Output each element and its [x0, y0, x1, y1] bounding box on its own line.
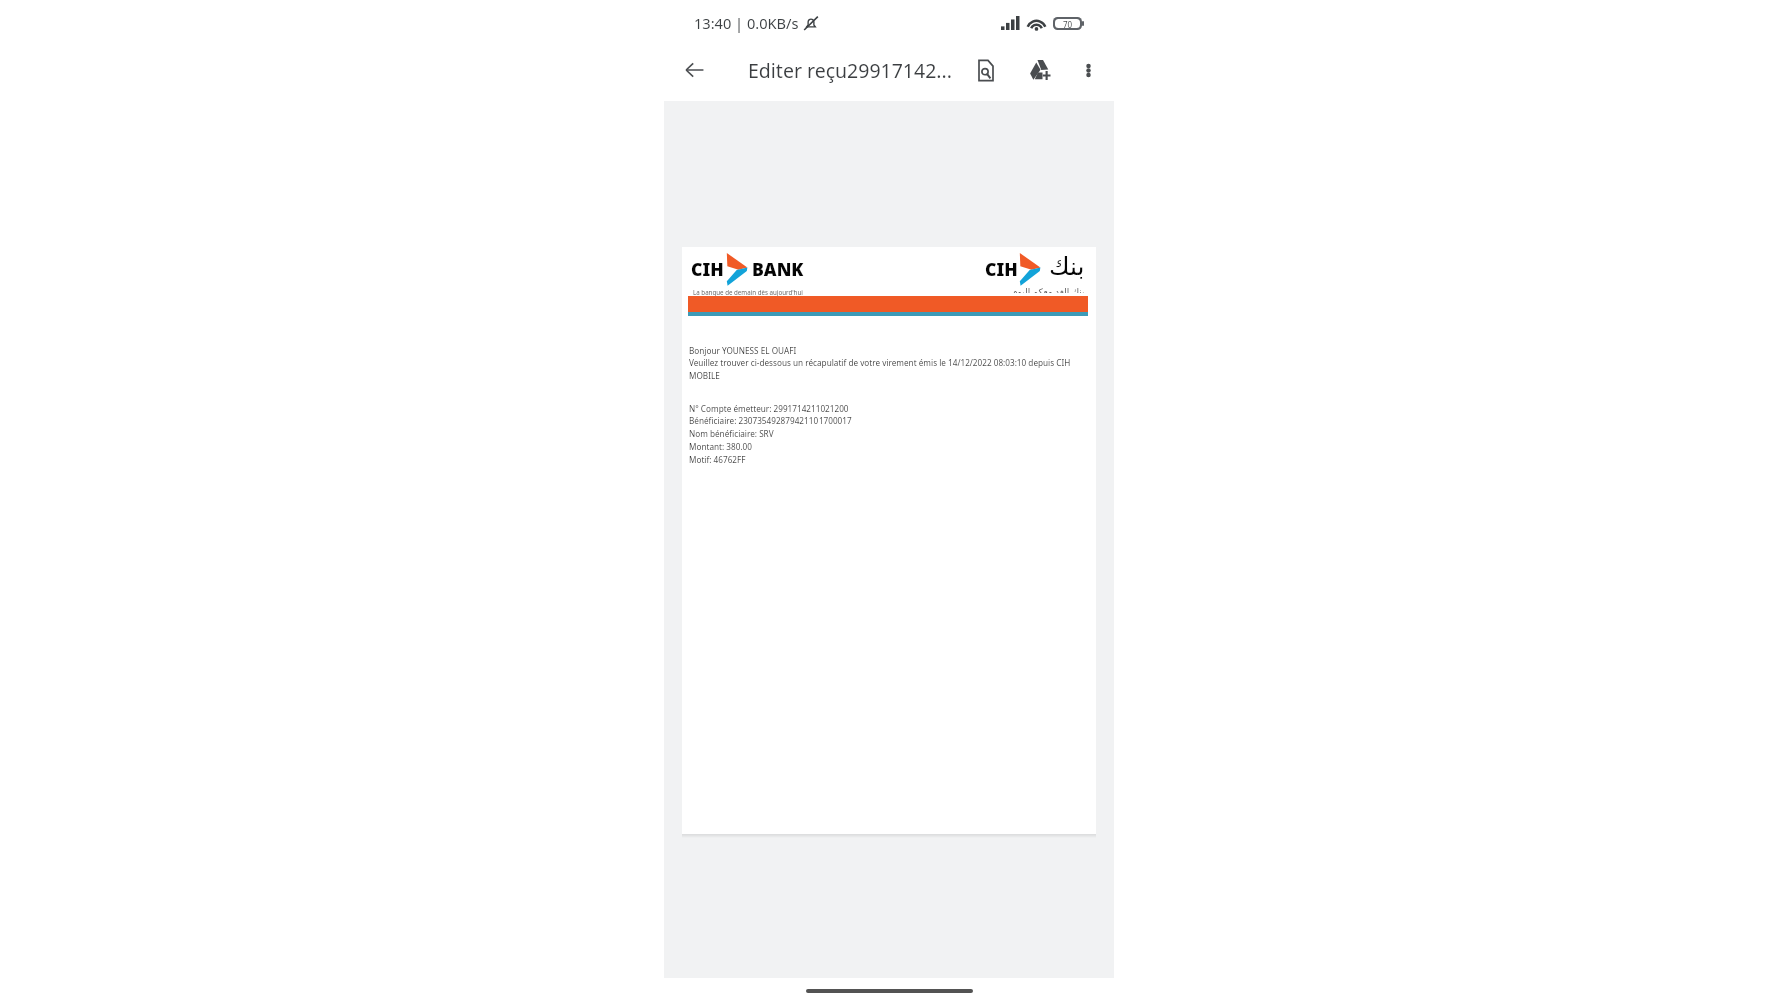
button[interactable]: Save to Drive: [1017, 47, 1063, 93]
staticText: Bonjour YOUNESS EL OUAFI Veuillez trouve…: [689, 345, 1079, 381]
staticText: N° Compte émetteur: 2991714211021200 Bén…: [689, 403, 852, 465]
other: Home gesture bar: [806, 989, 973, 993]
staticText: BANK: [752, 257, 804, 281]
staticText: Editer reçu29917142...: [748, 57, 953, 84]
staticText: La banque de demain dès aujourd'hui: [693, 288, 803, 296]
staticText: 70: [1063, 19, 1073, 28]
button[interactable]: Find in document: [963, 47, 1009, 93]
staticText: CIH: [691, 257, 724, 281]
staticText: بنك الغد معكم اليوم: [1012, 285, 1085, 293]
staticText: CIH: [985, 257, 1018, 281]
staticText: بنك: [1049, 252, 1085, 281]
button[interactable]: CIH: [682, 247, 1096, 834]
staticText: 13:40 | 0.0KB/s: [694, 13, 799, 33]
button[interactable]: More options: [1069, 51, 1107, 89]
button[interactable]: Back: [672, 48, 716, 92]
